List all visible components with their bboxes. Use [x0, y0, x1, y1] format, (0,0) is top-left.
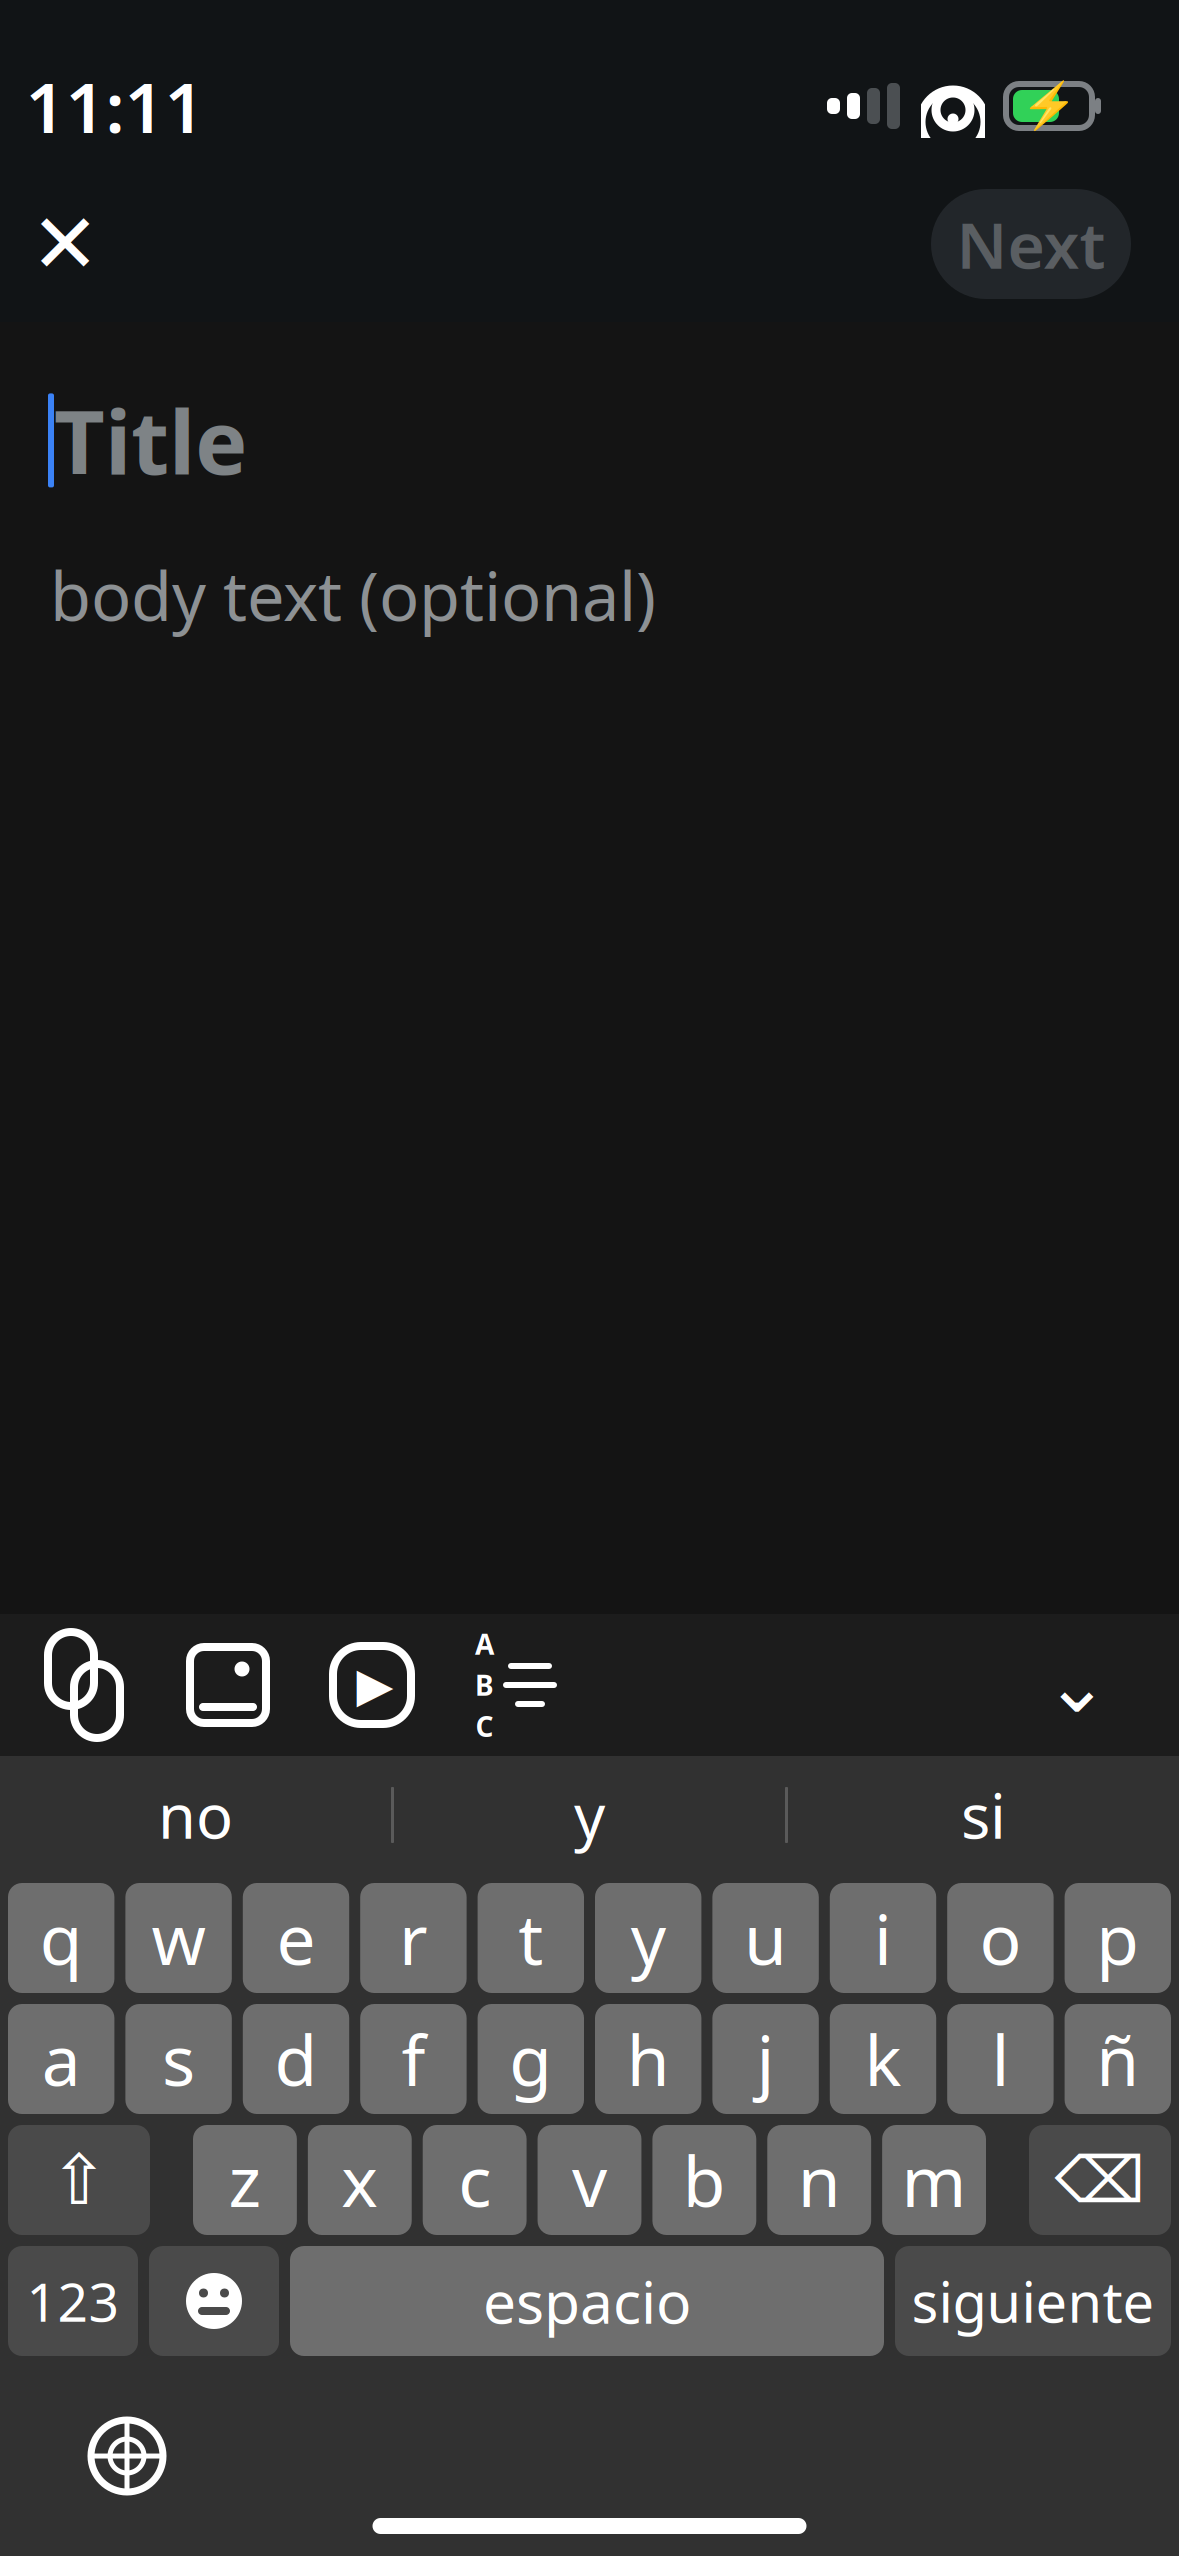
staticText: ⌄: [1044, 1641, 1109, 1729]
staticText: n: [798, 2134, 841, 2226]
staticText: g: [509, 2013, 552, 2105]
staticText: d: [274, 2013, 317, 2105]
button[interactable]: k: [830, 2004, 936, 2114]
staticText: espacio: [483, 2262, 691, 2340]
button[interactable]: ñ: [1065, 2004, 1171, 2114]
button[interactable]: Add link: [12, 1614, 156, 1756]
button[interactable]: Change keyboard: [52, 2391, 202, 2521]
button[interactable]: g: [478, 2004, 584, 2114]
button[interactable]: Shift: [8, 2125, 150, 2235]
staticText: i: [874, 1892, 892, 1984]
button[interactable]: i: [830, 1883, 936, 1993]
button[interactable]: espacio: [290, 2246, 884, 2356]
button[interactable]: c: [423, 2125, 527, 2235]
button[interactable]: u: [712, 1883, 819, 1993]
staticText: ▶: [356, 1658, 393, 1712]
staticText: u: [744, 1892, 787, 1984]
staticText: e: [276, 1892, 315, 1984]
staticText: no: [158, 1774, 233, 1856]
button[interactable]: Delete: [1029, 2125, 1171, 2235]
button[interactable]: l: [947, 2004, 1054, 2114]
button[interactable]: Next: [931, 189, 1131, 299]
button[interactable]: Add video: [300, 1614, 444, 1756]
staticText: Title: [54, 382, 248, 499]
staticText: s: [162, 2013, 195, 2105]
staticText: 11:11: [25, 60, 204, 152]
staticText: l: [991, 2013, 1009, 2105]
button[interactable]: a: [8, 2004, 114, 2114]
staticText: ✕: [30, 197, 99, 291]
button[interactable]: 123: [8, 2246, 138, 2356]
staticText: c: [458, 2134, 491, 2226]
staticText: f: [401, 2013, 425, 2105]
staticText: y: [574, 1774, 605, 1856]
button[interactable]: b: [652, 2125, 756, 2235]
button[interactable]: d: [243, 2004, 349, 2114]
button[interactable]: q: [8, 1883, 114, 1993]
button[interactable]: f: [360, 2004, 467, 2114]
button[interactable]: y: [595, 1883, 701, 1993]
button[interactable]: t: [478, 1883, 584, 1993]
button[interactable]: n: [767, 2125, 871, 2235]
staticText: r: [399, 1892, 428, 1984]
button[interactable]: e: [243, 1883, 349, 1993]
staticText: j: [757, 2013, 775, 2105]
staticText: t: [518, 1892, 543, 1984]
staticText: y: [631, 1892, 666, 1984]
staticText: ⇧: [50, 2141, 108, 2219]
button[interactable]: Add image: [156, 1614, 300, 1756]
staticText: w: [152, 1892, 206, 1984]
staticText: q: [40, 1892, 83, 1984]
button[interactable]: Close: [0, 179, 130, 309]
staticText: h: [627, 2013, 670, 2105]
button[interactable]: s: [125, 2004, 232, 2114]
staticText: v: [572, 2134, 607, 2226]
button[interactable]: r: [360, 1883, 467, 1993]
button[interactable]: h: [595, 2004, 701, 2114]
button[interactable]: Collapse toolbar: [1017, 1614, 1137, 1756]
button[interactable]: j: [712, 2004, 819, 2114]
button[interactable]: p: [1065, 1883, 1171, 1993]
staticText: siguiente: [911, 2264, 1154, 2338]
button[interactable]: no: [0, 1756, 391, 1874]
staticText: p: [1096, 1892, 1139, 1984]
button[interactable]: o: [947, 1883, 1054, 1993]
staticText: ⚡: [1021, 80, 1077, 132]
button[interactable]: m: [882, 2125, 986, 2235]
staticText: x: [341, 2134, 378, 2226]
staticText: ñ: [1096, 2013, 1139, 2105]
staticText: Next: [956, 201, 1105, 286]
staticText: b: [683, 2134, 726, 2226]
staticText: k: [864, 2013, 901, 2105]
staticText: 123: [26, 2266, 119, 2336]
button[interactable]: Emoji: [149, 2246, 279, 2356]
staticText: si: [961, 1774, 1006, 1856]
button[interactable]: siguiente: [895, 2246, 1171, 2356]
button[interactable]: y: [394, 1756, 785, 1874]
staticText: z: [228, 2134, 261, 2226]
button[interactable]: Add poll: [444, 1614, 588, 1756]
staticText: body text (optional): [50, 551, 656, 639]
staticText: A: [475, 1625, 494, 1662]
staticText: B: [475, 1666, 494, 1704]
button[interactable]: w: [125, 1883, 232, 1993]
staticText: C: [475, 1708, 493, 1745]
button[interactable]: si: [788, 1756, 1179, 1874]
staticText: m: [902, 2134, 967, 2226]
staticText: o: [979, 1892, 1021, 1984]
button[interactable]: z: [193, 2125, 297, 2235]
button[interactable]: v: [538, 2125, 641, 2235]
button[interactable]: x: [308, 2125, 412, 2235]
staticText: a: [42, 2013, 81, 2105]
staticText: ⌫: [1054, 2144, 1145, 2216]
